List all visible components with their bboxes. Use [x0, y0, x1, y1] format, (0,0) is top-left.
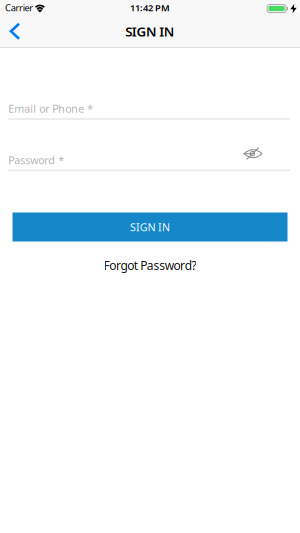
staticText: Forgot Password? [104, 257, 196, 273]
staticText: Email or Phone * [8, 101, 93, 116]
button[interactable]: Email or Phone * [0, 102, 300, 119]
staticText: SIGN IN [130, 220, 170, 234]
staticText: 11:42 PM [130, 2, 170, 14]
button[interactable]: SIGN IN [12, 212, 287, 241]
staticText: Carrier [5, 2, 33, 14]
staticText: Password * [8, 153, 64, 167]
button[interactable]: Back [0, 20, 29, 43]
staticText: SIGN IN [125, 22, 175, 40]
button[interactable]: Forgot Password? [104, 251, 196, 277]
button[interactable]: Password * [0, 153, 300, 171]
button[interactable]: Show password [242, 145, 264, 163]
